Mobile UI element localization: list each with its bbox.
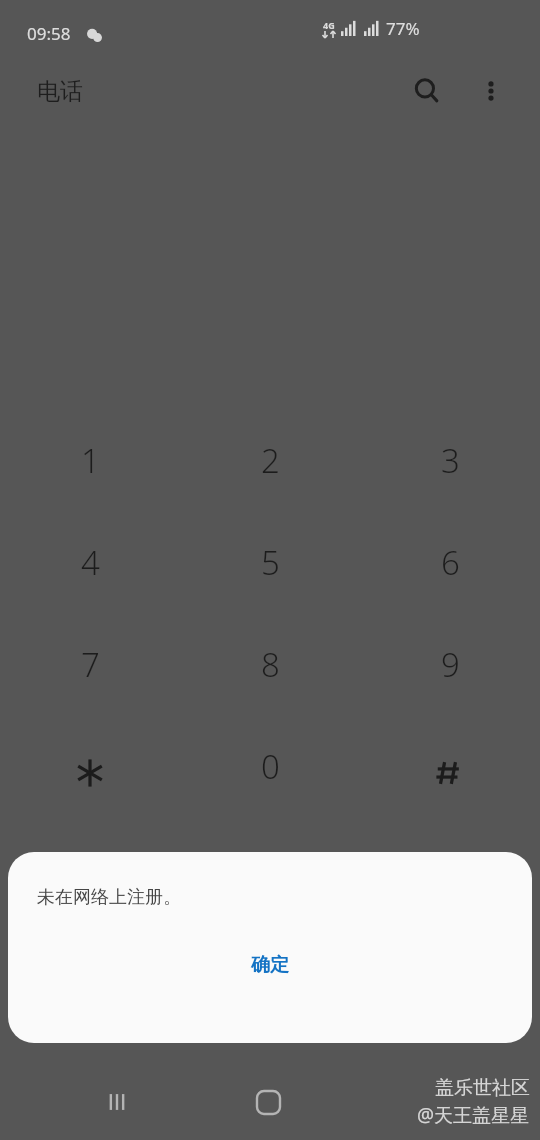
staticText: 77% bbox=[386, 17, 420, 40]
staticText: 6 bbox=[441, 540, 460, 585]
button[interactable]: Recent apps bbox=[93, 1078, 141, 1126]
staticText: 8 bbox=[261, 642, 280, 687]
button[interactable]: 9 bbox=[360, 642, 540, 693]
staticText: 4 bbox=[81, 540, 100, 585]
staticText: 1 bbox=[81, 438, 100, 483]
button[interactable]: 8 bbox=[180, 642, 360, 693]
button[interactable]: 1 bbox=[0, 438, 180, 489]
button[interactable]: Home bbox=[244, 1078, 292, 1126]
button[interactable]: 5 bbox=[180, 540, 360, 591]
staticText: 5 bbox=[261, 540, 280, 585]
staticText: 09:58 bbox=[27, 22, 71, 45]
staticText: 2 bbox=[261, 438, 280, 483]
button[interactable]: 3 bbox=[360, 438, 540, 489]
staticText: 盖乐世社区 bbox=[435, 1076, 530, 1100]
staticText: 3 bbox=[441, 438, 460, 483]
button[interactable]: Search bbox=[403, 67, 451, 115]
staticText: 4G bbox=[323, 19, 335, 31]
button[interactable]: 6 bbox=[360, 540, 540, 591]
button[interactable]: 确定 bbox=[8, 937, 532, 993]
button[interactable]: 2 bbox=[180, 438, 360, 489]
staticText: 未在网络上注册。 bbox=[37, 886, 181, 909]
button[interactable] bbox=[0, 744, 180, 795]
button[interactable]: 0 bbox=[180, 744, 360, 795]
staticText: 7 bbox=[81, 642, 100, 687]
staticText: 确定 bbox=[251, 953, 289, 977]
staticText: 0 bbox=[261, 744, 280, 789]
button[interactable]: More options bbox=[467, 67, 515, 115]
button[interactable]: 4 bbox=[0, 540, 180, 591]
button[interactable] bbox=[360, 744, 540, 795]
staticText: 电话 bbox=[37, 77, 83, 106]
staticText: 9 bbox=[441, 642, 460, 687]
staticText: @天王盖星星 bbox=[417, 1102, 530, 1128]
button[interactable]: 7 bbox=[0, 642, 180, 693]
